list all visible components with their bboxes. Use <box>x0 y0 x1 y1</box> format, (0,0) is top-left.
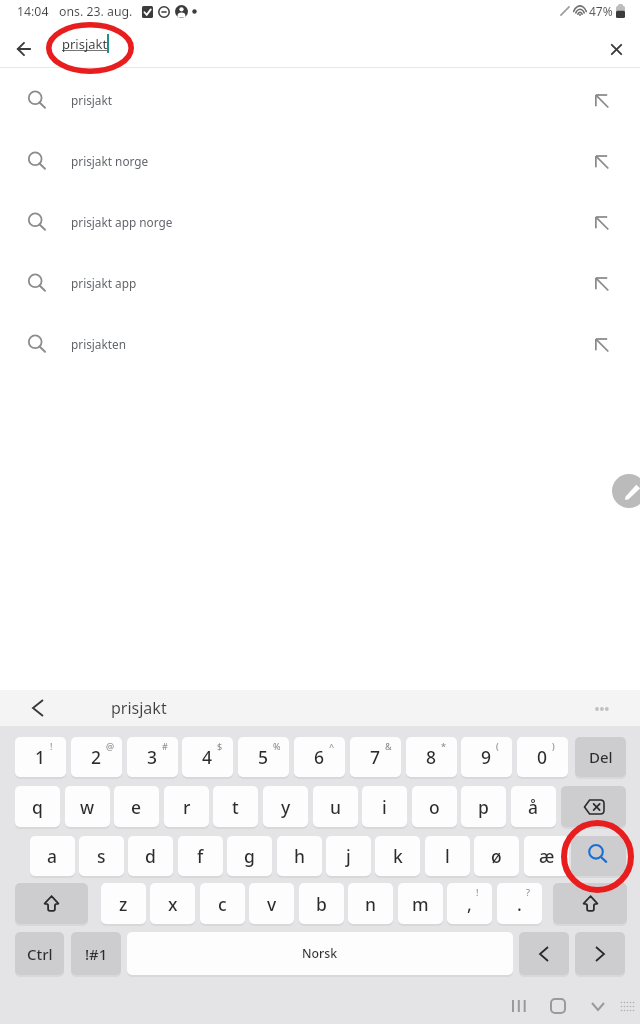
button[interactable] <box>561 786 626 827</box>
button[interactable]: Recents <box>505 992 533 1020</box>
staticText: t <box>232 795 239 819</box>
button[interactable] <box>15 883 88 924</box>
staticText: * <box>441 740 446 752</box>
button[interactable]: n <box>348 883 393 924</box>
staticText: & <box>385 740 392 752</box>
button[interactable]: prisjakt norge <box>0 130 640 191</box>
button[interactable]: å <box>511 786 556 827</box>
button[interactable]: Previous <box>23 693 53 723</box>
button[interactable]: g <box>227 836 272 876</box>
button[interactable]: 9 <box>461 737 512 777</box>
button[interactable]: 4 <box>182 737 233 777</box>
staticText: 5 <box>258 745 269 769</box>
button[interactable]: c <box>200 883 245 924</box>
button[interactable]: 7 <box>350 737 401 777</box>
button[interactable]: Hide keyboard <box>584 992 612 1020</box>
staticText: k <box>393 844 403 868</box>
staticText: prisjakt app <box>71 275 137 291</box>
button[interactable]: i <box>362 786 407 827</box>
staticText: prisjakt norge <box>71 153 149 169</box>
staticText: m <box>412 892 429 916</box>
staticText: y <box>281 795 291 819</box>
button[interactable]: x <box>150 883 195 924</box>
staticText: prisjakt <box>111 697 167 719</box>
button[interactable]: prisjakt <box>0 69 640 130</box>
button[interactable]: Back <box>4 29 44 69</box>
staticText: Ctrl <box>27 944 53 964</box>
button[interactable] <box>553 883 627 924</box>
button[interactable]: Clear <box>596 29 636 69</box>
button[interactable]: d <box>128 836 173 876</box>
button[interactable]: 1 <box>15 737 66 777</box>
button[interactable]: æ <box>524 836 569 876</box>
button[interactable]: p <box>461 786 506 827</box>
button[interactable]: f <box>178 836 223 876</box>
button[interactable]: Del <box>575 737 626 777</box>
staticText: ( <box>496 740 499 752</box>
staticText: i <box>382 795 387 819</box>
staticText: @ <box>106 740 115 752</box>
staticText: ø <box>491 844 502 868</box>
staticText: 6 <box>314 745 325 769</box>
button[interactable]: Handwriting <box>612 474 640 508</box>
staticText: 0 <box>537 745 548 769</box>
staticText: . <box>517 892 522 916</box>
staticText: 14:04 <box>17 3 49 20</box>
button[interactable]: v <box>249 883 294 924</box>
staticText: ^ <box>329 740 335 752</box>
button[interactable]: prisjakt app <box>0 252 640 313</box>
button[interactable]: Keyboard layout <box>613 992 640 1020</box>
button[interactable]: 5 <box>238 737 289 777</box>
button[interactable]: !#1 <box>71 932 121 975</box>
staticText: v <box>267 892 277 916</box>
staticText: r <box>183 795 191 819</box>
staticText: a <box>47 844 58 868</box>
button[interactable]: o <box>412 786 457 827</box>
button[interactable] <box>519 932 569 975</box>
button[interactable]: r <box>164 786 209 827</box>
staticText: ? <box>526 886 530 898</box>
button[interactable]: prisjakten <box>0 313 640 374</box>
button[interactable]: . <box>497 883 542 924</box>
button[interactable]: ø <box>474 836 519 876</box>
button[interactable]: k <box>375 836 420 876</box>
button[interactable]: m <box>398 883 443 924</box>
button[interactable]: z <box>101 883 146 924</box>
staticText: 2 <box>91 745 102 769</box>
button[interactable]: prisjakt app norge <box>0 191 640 252</box>
button[interactable]: w <box>65 786 110 827</box>
button[interactable]: t <box>213 786 258 827</box>
staticText: Del <box>589 747 613 767</box>
button[interactable]: a <box>30 836 75 876</box>
button[interactable]: , <box>447 883 492 924</box>
button[interactable]: q <box>15 786 60 827</box>
button[interactable]: u <box>313 786 358 827</box>
button[interactable]: Home <box>544 992 572 1020</box>
staticText: Norsk <box>302 945 338 962</box>
button[interactable]: 3 <box>127 737 178 777</box>
button[interactable]: y <box>263 786 308 827</box>
button[interactable]: b <box>299 883 344 924</box>
button[interactable]: 8 <box>406 737 457 777</box>
staticText: 47% <box>589 3 613 19</box>
button[interactable] <box>571 836 626 876</box>
button[interactable]: h <box>277 836 322 876</box>
button[interactable]: Ctrl <box>15 932 64 975</box>
staticText: l <box>445 844 450 868</box>
staticText: u <box>330 795 341 819</box>
staticText: !#1 <box>85 944 108 964</box>
staticText: ! <box>476 886 479 898</box>
button[interactable]: Norsk <box>127 932 513 975</box>
staticText: x <box>168 892 178 916</box>
button[interactable]: j <box>326 836 371 876</box>
staticText: o <box>429 795 440 819</box>
button[interactable]: 0 <box>517 737 568 777</box>
button[interactable]: 6 <box>294 737 345 777</box>
staticText: g <box>244 844 255 868</box>
staticText: % <box>273 740 281 752</box>
button[interactable]: s <box>79 836 124 876</box>
button[interactable]: 2 <box>71 737 122 777</box>
button[interactable]: l <box>425 836 470 876</box>
button[interactable] <box>575 932 625 975</box>
button[interactable]: e <box>114 786 159 827</box>
